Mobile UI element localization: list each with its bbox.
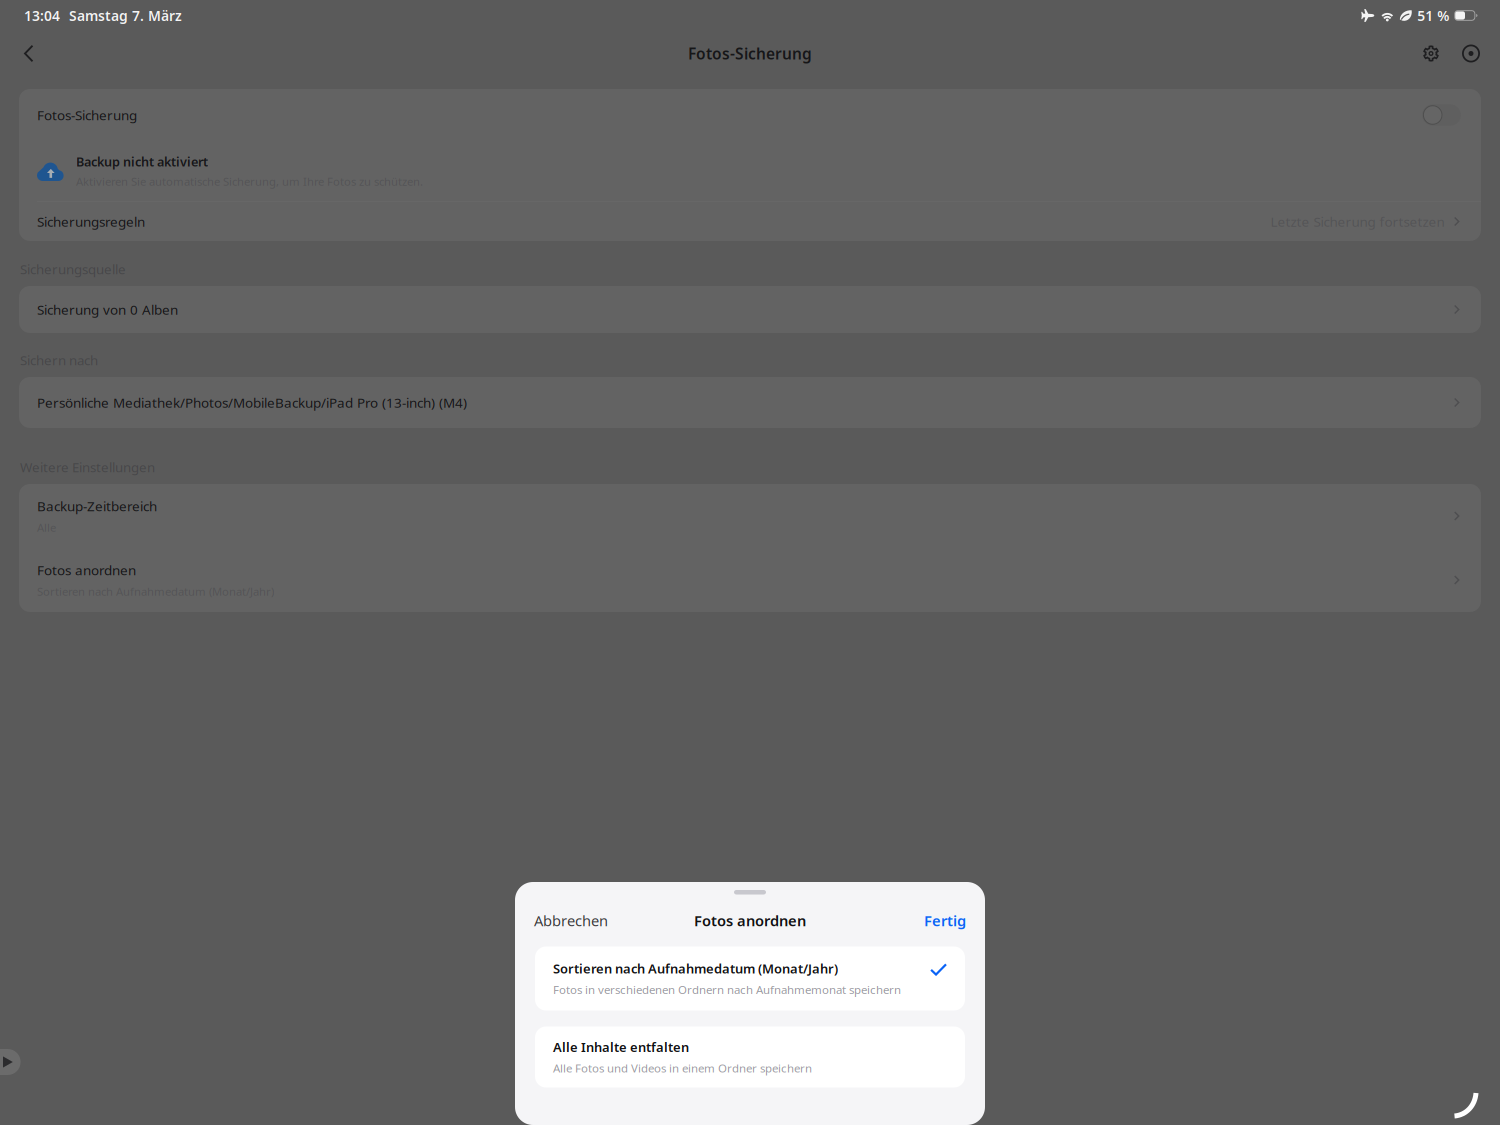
staticText: Alle (37, 520, 56, 535)
staticText: 51 % (1417, 6, 1449, 25)
staticText: Sortieren nach Aufnahmedatum (Monat/Jahr… (553, 960, 838, 977)
staticText: Abbrechen (534, 911, 608, 930)
staticText: Fertig (924, 911, 966, 930)
staticText: Fotos in verschiedenen Ordnern nach Aufn… (553, 982, 901, 997)
button[interactable]: Wiedergabe (0, 1049, 39, 1075)
button[interactable]: Sortieren nach Aufnahmedatum (Monat/Jahr… (535, 946, 965, 1010)
staticText: 13:04 (24, 6, 60, 25)
staticText: Persönliche Mediathek/Photos/MobileBacku… (37, 394, 467, 411)
button[interactable]: Fotos anordnen (19, 548, 1481, 612)
staticText: Fotos-Sicherung (688, 43, 812, 64)
staticText: Fotos anordnen (37, 561, 136, 579)
button[interactable]: Fertig (919, 903, 971, 937)
staticText: Alle Fotos und Videos in einem Ordner sp… (553, 1060, 812, 1076)
button[interactable]: Aufnahme (1451, 33, 1491, 73)
staticText: Sortieren nach Aufnahmedatum (Monat/Jahr… (37, 584, 274, 599)
staticText: Backup-Zeitbereich (37, 497, 157, 515)
button[interactable]: Einstellungen (1411, 33, 1451, 73)
staticText: Fotos-Sicherung (37, 106, 137, 124)
staticText: Aktivieren Sie automatische Sicherung, u… (76, 174, 423, 189)
button[interactable]: Alle Inhalte entfalten (535, 1026, 965, 1087)
staticText: Sicherungsregeln (37, 213, 145, 230)
staticText: Fotos anordnen (694, 911, 806, 930)
staticText: Letzte Sicherung fortsetzen (1270, 213, 1444, 230)
button[interactable]: Abbrechen (529, 903, 613, 937)
button[interactable]: Sicherung von 0 Alben (19, 286, 1481, 333)
staticText: Alle Inhalte entfalten (553, 1038, 689, 1055)
staticText: Samstag 7. März (69, 6, 182, 25)
staticText: Weitere Einstellungen (20, 458, 155, 476)
staticText: Sichern nach (20, 351, 98, 369)
button[interactable]: Sicherungsregeln (19, 202, 1481, 241)
staticText: Sicherung von 0 Alben (37, 301, 178, 318)
button[interactable]: Backup-Zeitbereich (19, 484, 1481, 548)
button[interactable]: Zurück (9, 33, 49, 73)
staticText: Backup nicht aktiviert (76, 153, 208, 170)
button[interactable]: Persönliche Mediathek/Photos/MobileBacku… (19, 377, 1481, 428)
staticText: Sicherungsquelle (20, 260, 126, 278)
